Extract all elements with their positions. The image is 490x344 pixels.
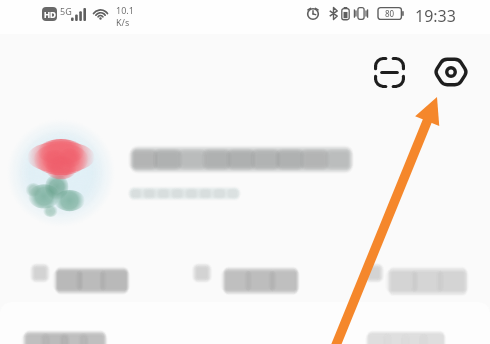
staticText: 5G (60, 5, 72, 17)
staticText: 19:33 (415, 5, 456, 27)
staticText: K/s (116, 16, 130, 28)
staticText: 10.1 (116, 4, 134, 16)
button[interactable] (196, 258, 306, 292)
button[interactable]: Scan QR code (369, 52, 409, 92)
staticText: 80 (385, 8, 395, 19)
staticText: HD (44, 9, 56, 20)
button[interactable] (34, 258, 166, 292)
button[interactable] (0, 302, 490, 344)
button[interactable]: Settings (431, 52, 471, 92)
button[interactable] (368, 258, 478, 292)
button[interactable] (0, 110, 490, 230)
